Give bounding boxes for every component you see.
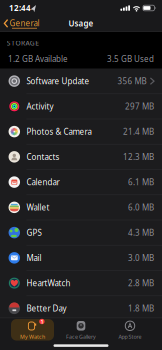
staticText: 1 [40,318,43,325]
staticText: 6.1 MB [128,177,154,187]
staticText: 297 MB [125,101,154,112]
button[interactable]: Contacts [0,144,162,169]
button[interactable]: Face Gallery [56,315,106,345]
staticText: 12.3 MB [123,152,154,162]
staticText: 21.4 MB [123,126,154,137]
staticText: Contacts [26,152,59,162]
staticText: Activity [26,101,53,112]
button[interactable]: Wallet [0,195,162,220]
button[interactable]: GPS [0,220,162,245]
button[interactable]: Photos & Camera [0,119,162,144]
staticText: STORAGE [7,39,39,47]
staticText: Wallet [26,202,49,213]
staticText: 6.0 MB [128,202,154,213]
button[interactable]: App Store [105,315,155,345]
staticText: Usage [68,18,93,29]
staticText: 1.2 GB Available [8,54,68,64]
staticText: App Store [118,333,141,340]
staticText: 1.8 MB [128,303,154,314]
button[interactable]: Calendar [0,169,162,195]
staticText: HeartWatch [26,278,70,288]
button[interactable]: Mail [0,245,162,270]
staticText: 4.3 MB [128,227,154,238]
button[interactable]: Software Update [0,68,162,94]
staticText: GPS [26,227,41,238]
staticText: Calendar [26,177,59,187]
button[interactable]: Better Day [0,296,162,321]
staticText: Photos & Camera [26,126,91,137]
button[interactable]: Activity [0,94,162,119]
button[interactable]: HeartWatch [0,270,162,296]
staticText: 2.8 MB [128,278,154,288]
staticText: 3.5 GB Used [107,54,154,64]
staticText: My Watch [20,333,45,340]
staticText: Better Day [26,303,66,314]
staticText: General [9,18,39,28]
button[interactable]: Back [0,15,44,31]
staticText: Software Update [26,76,89,86]
button[interactable]: My Watch [7,315,57,345]
staticText: 12:44 [9,3,31,13]
staticText: Mail [26,253,41,263]
staticText: 3.0 MB [128,253,154,263]
staticText: 356 MB [117,76,146,86]
staticText: Face Gallery [66,333,96,340]
